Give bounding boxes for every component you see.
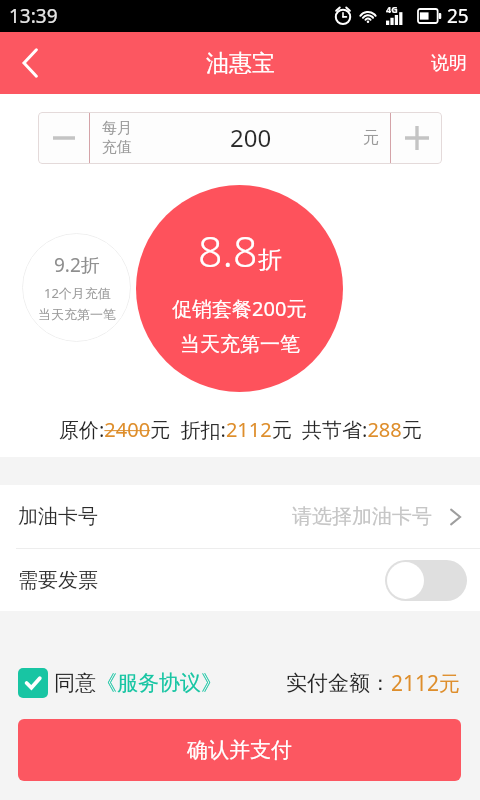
- staticText: 充值: [102, 138, 132, 157]
- staticText: 9.2折: [54, 252, 100, 278]
- staticText: 200: [230, 121, 272, 154]
- staticText: 当天充第一笔: [180, 332, 300, 357]
- staticText: 折: [258, 245, 282, 275]
- button[interactable]: Increase: [391, 112, 442, 164]
- staticText: 促销套餐200元: [172, 295, 307, 322]
- button[interactable]: 需要发票: [0, 549, 480, 611]
- staticText: 原价:2400元 折扣:2112元 共节省:288元: [59, 416, 422, 443]
- staticText: 当天充第一笔: [38, 306, 116, 322]
- staticText: 确认并支付: [187, 737, 292, 763]
- button[interactable]: Need invoice toggle: [385, 560, 467, 601]
- staticText: 《服务协议》: [96, 670, 222, 696]
- button[interactable]: 确认并支付: [18, 719, 461, 781]
- button[interactable]: Decrease: [38, 112, 89, 164]
- button[interactable]: Back: [0, 32, 59, 94]
- staticText: 同意: [54, 670, 96, 696]
- staticText: 油惠宝: [206, 49, 275, 78]
- button[interactable]: 同意: [18, 668, 222, 698]
- staticText: 加油卡号: [18, 504, 98, 529]
- staticText: 8.8: [198, 221, 258, 280]
- staticText: 4G: [386, 3, 398, 15]
- staticText: 25: [447, 3, 469, 29]
- staticText: 12个月充值: [44, 284, 111, 302]
- staticText: ：: [370, 670, 391, 696]
- staticText: 元: [363, 128, 379, 148]
- staticText: 实付金额: [286, 670, 370, 696]
- button[interactable]: 8.8: [136, 185, 343, 392]
- staticText: 2112元: [391, 669, 461, 698]
- other: Select fuel card: [450, 509, 461, 525]
- staticText: 需要发票: [18, 568, 98, 593]
- staticText: 每月: [102, 119, 132, 138]
- staticText: 说明: [431, 52, 467, 75]
- staticText: 请选择加油卡号: [292, 504, 432, 529]
- button[interactable]: 9.2折: [22, 233, 131, 342]
- staticText: 13:39: [9, 3, 58, 29]
- button[interactable]: 说明: [417, 32, 480, 94]
- button[interactable]: 加油卡号: [0, 485, 480, 548]
